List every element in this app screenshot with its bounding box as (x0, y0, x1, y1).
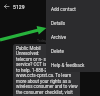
staticText: to help. 1-888-221-1687 or (16, 68, 69, 73)
staticText: more about your rights as a (16, 79, 71, 84)
button[interactable]: Details (46, 16, 100, 30)
staticText: telecom or n- service? CCT (16, 57, 70, 62)
button[interactable]: Add contact (46, 2, 100, 16)
button[interactable]: Help & feedback (46, 58, 100, 72)
staticText: wireless consumer and to view (16, 84, 78, 89)
staticText: Unresolved: (16, 51, 40, 56)
staticText: Delete (51, 49, 64, 54)
button[interactable]: Back (0, 0, 13, 13)
staticText: Details (51, 21, 66, 26)
staticText: Public Mobil (16, 46, 41, 51)
staticText: Add contact (51, 7, 76, 12)
staticText: www.ccts-cprst.ca. To learn (16, 73, 72, 78)
staticText: Archive (51, 35, 67, 40)
staticText: 5129 (13, 4, 25, 10)
button[interactable]: Delete (46, 44, 100, 58)
staticText: Today (37, 39, 47, 43)
staticText: the consumer checklist, visit (16, 90, 73, 95)
staticText: Help & feedback (51, 63, 85, 68)
button[interactable]: Archive (46, 30, 100, 44)
staticText: service? CCT is here to help (16, 62, 72, 67)
